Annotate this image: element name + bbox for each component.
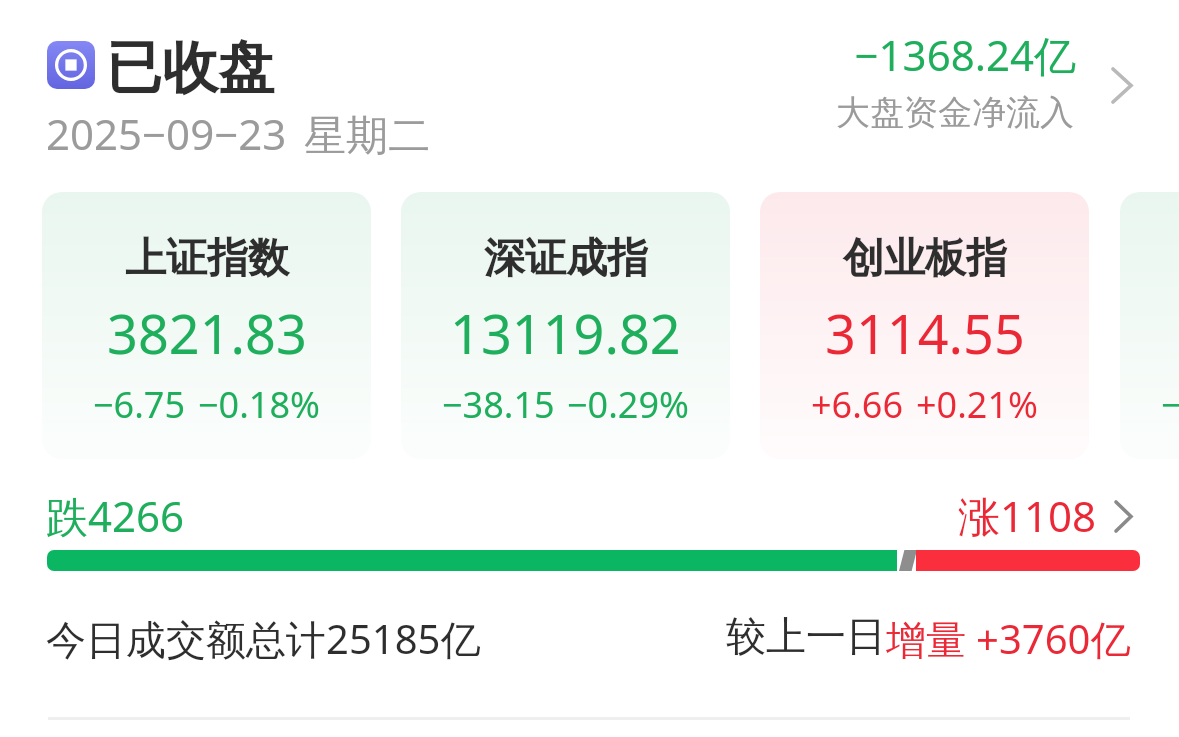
button[interactable]: 创业板指	[760, 192, 1089, 459]
button[interactable]: 跌4266	[40, 480, 1150, 580]
staticText: 13119.82	[450, 296, 681, 366]
staticText: −0.29%	[567, 380, 689, 429]
other: Capital flow details	[1094, 57, 1150, 113]
staticText: −1368.24亿	[700, 26, 1076, 83]
staticText: 3821.83	[107, 296, 307, 366]
staticText: 较上一日	[726, 611, 886, 661]
button[interactable]: 今日成交额总计25185亿	[40, 600, 1140, 675]
staticText: +6.66	[811, 380, 904, 429]
button[interactable]: −1368.24亿	[690, 18, 1150, 144]
other: Advancers and decliners	[1098, 491, 1148, 541]
other: Market closed	[47, 41, 95, 89]
button[interactable]: Market closed	[40, 24, 440, 164]
staticText: 创业板指	[843, 233, 1007, 285]
staticText: 涨1108	[700, 487, 1096, 544]
staticText: 跌4266	[46, 487, 185, 544]
button[interactable]: 上证指数	[42, 192, 371, 459]
staticText: 已收盘	[106, 33, 274, 104]
staticText: +0.21%	[916, 380, 1038, 429]
staticText: 2025−09−23 星期二	[46, 105, 431, 162]
staticText: −0.18%	[198, 380, 320, 429]
button[interactable]: 深证成指	[401, 192, 730, 459]
staticText: 大盘资金净流入	[700, 91, 1074, 134]
staticText: 今日成交额总计25185亿	[46, 611, 481, 666]
staticText: 3114.55	[825, 296, 1025, 366]
staticText: 深证成指	[484, 233, 648, 285]
staticText: 上证指数	[125, 233, 289, 285]
staticText: 增量 +3760亿	[886, 611, 1131, 666]
button[interactable]: 科创50	[1120, 192, 1179, 459]
staticText: −6.75	[93, 380, 186, 429]
staticText: −13.21	[1161, 380, 1179, 429]
staticText: −38.15	[442, 380, 555, 429]
